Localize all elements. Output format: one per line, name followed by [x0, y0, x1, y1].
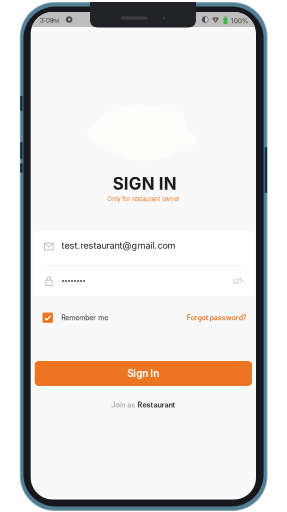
button[interactable]: Join as	[111, 399, 176, 410]
staticText: PM	[52, 18, 59, 24]
button[interactable]: Forgot password?	[187, 312, 247, 323]
staticText: Join as	[111, 400, 135, 409]
staticText: Sign In	[127, 367, 159, 379]
staticText: Remember me	[61, 313, 108, 322]
staticText: Restaurant	[138, 400, 176, 409]
staticText: 100%	[231, 17, 249, 25]
staticText: Only for restaurant owner	[107, 195, 179, 203]
button[interactable]: Sign In	[35, 361, 252, 386]
button[interactable]: Remember me	[42, 311, 108, 324]
staticText: Forgot password?	[187, 313, 247, 322]
staticText: test.restaurant@gmail.com	[62, 240, 176, 251]
staticText: 3:09	[40, 16, 54, 24]
staticText: SIGN IN	[113, 173, 177, 194]
